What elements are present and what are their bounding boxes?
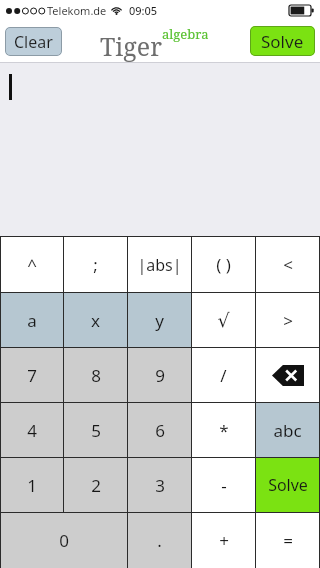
- button[interactable]: -: [192, 458, 255, 512]
- staticText: 1: [27, 474, 37, 497]
- staticText: -: [221, 474, 227, 497]
- staticText: .: [157, 529, 162, 552]
- button[interactable]: 9: [128, 348, 191, 402]
- staticText: 09:05: [129, 3, 158, 18]
- staticText: 8: [91, 364, 101, 387]
- staticText: Telekom.de: [47, 3, 107, 18]
- button[interactable]: Backspace: [256, 348, 319, 402]
- button[interactable]: ;: [64, 237, 127, 292]
- staticText: Solve: [261, 30, 304, 53]
- button[interactable]: <: [256, 237, 319, 292]
- staticText: 0: [59, 529, 69, 552]
- button[interactable]: ^: [1, 237, 63, 292]
- staticText: ^: [27, 253, 37, 276]
- staticText: 4: [27, 419, 37, 442]
- button[interactable]: 5: [64, 403, 127, 457]
- staticText: 2: [91, 474, 101, 497]
- button[interactable]: 1: [1, 458, 63, 512]
- button[interactable]: 6: [128, 403, 191, 457]
- button[interactable]: .: [128, 513, 191, 568]
- staticText: 3: [155, 474, 165, 497]
- button[interactable]: /: [192, 348, 255, 402]
- staticText: =: [283, 529, 293, 552]
- button[interactable]: 8: [64, 348, 127, 402]
- staticText: Tiger: [100, 29, 162, 63]
- staticText: Solve: [268, 474, 308, 496]
- staticText: 6: [155, 419, 165, 442]
- staticText: x: [91, 309, 100, 332]
- button[interactable]: √: [192, 293, 255, 347]
- staticText: 5: [91, 419, 101, 442]
- staticText: abc: [273, 419, 302, 442]
- other: Backspace: [272, 365, 304, 386]
- button[interactable]: ( ): [192, 237, 255, 292]
- button[interactable]: >: [256, 293, 319, 347]
- button[interactable]: y: [128, 293, 191, 347]
- staticText: algebra: [162, 25, 209, 43]
- staticText: /: [220, 364, 227, 387]
- button[interactable]: Clear: [5, 27, 62, 56]
- staticText: *: [219, 419, 229, 442]
- button[interactable]: 4: [1, 403, 63, 457]
- button[interactable]: *: [192, 403, 255, 457]
- button[interactable]: x: [64, 293, 127, 347]
- button[interactable]: 2: [64, 458, 127, 512]
- staticText: 9: [155, 364, 165, 387]
- button[interactable]: [0, 63, 320, 236]
- staticText: +: [219, 529, 229, 552]
- button[interactable]: Solve: [250, 26, 315, 56]
- button[interactable]: 3: [128, 458, 191, 512]
- button[interactable]: a: [1, 293, 63, 347]
- staticText: Clear: [14, 31, 53, 53]
- staticText: 7: [27, 364, 37, 387]
- staticText: ( ): [216, 253, 231, 276]
- staticText: ;: [93, 253, 98, 276]
- staticText: y: [155, 309, 164, 332]
- staticText: <: [283, 253, 293, 276]
- button[interactable]: 7: [1, 348, 63, 402]
- button[interactable]: |abs|: [128, 237, 191, 292]
- button[interactable]: abc: [256, 403, 319, 457]
- staticText: a: [27, 309, 37, 332]
- button[interactable]: Solve: [256, 458, 319, 512]
- button[interactable]: +: [192, 513, 255, 568]
- staticText: |abs|: [137, 254, 182, 276]
- button[interactable]: 0: [1, 513, 127, 568]
- staticText: √: [217, 309, 230, 331]
- staticText: >: [283, 309, 293, 332]
- button[interactable]: =: [256, 513, 319, 568]
